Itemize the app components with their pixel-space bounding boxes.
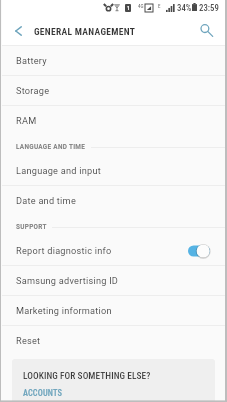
- staticText: Language and input: [16, 165, 101, 176]
- staticText: Reset: [16, 335, 41, 346]
- staticText: Storage: [16, 85, 50, 96]
- staticText: GENERAL MANAGEMENT: [34, 26, 136, 37]
- staticText: Date and time: [16, 195, 77, 206]
- staticText: Samsung advertising ID: [16, 275, 119, 286]
- staticText: LOOKING FOR SOMETHING ELSE?: [23, 370, 151, 381]
- staticText: 4G: [138, 3, 144, 9]
- button[interactable]: Navigate up: [5, 16, 31, 45]
- button[interactable]: Language and input: [2, 156, 225, 185]
- staticText: 23:59: [199, 3, 219, 13]
- staticText: E: [158, 3, 161, 9]
- button[interactable]: Search: [193, 16, 219, 45]
- staticText: Report diagnostic info: [16, 245, 112, 256]
- staticText: Battery: [16, 55, 47, 66]
- button[interactable]: Battery: [2, 46, 225, 75]
- button[interactable]: RAM: [2, 106, 225, 135]
- button[interactable]: Report diagnostic info: [2, 236, 225, 265]
- staticText: 1: [127, 5, 130, 11]
- staticText: SUPPORT: [16, 223, 47, 231]
- staticText: LANGUAGE AND TIME: [16, 143, 86, 151]
- button[interactable]: Reset: [2, 326, 225, 355]
- button[interactable]: Samsung advertising ID: [2, 266, 225, 295]
- staticText: RAM: [16, 115, 37, 126]
- button[interactable]: Date and time: [2, 186, 225, 215]
- staticText: Marketing information: [16, 305, 112, 316]
- button[interactable]: Storage: [2, 76, 225, 105]
- button[interactable]: LOOKING FOR SOMETHING ELSE?: [12, 359, 215, 401]
- staticText: ACCOUNTS: [23, 388, 62, 398]
- staticText: 34%: [177, 3, 192, 13]
- button[interactable]: Marketing information: [2, 296, 225, 325]
